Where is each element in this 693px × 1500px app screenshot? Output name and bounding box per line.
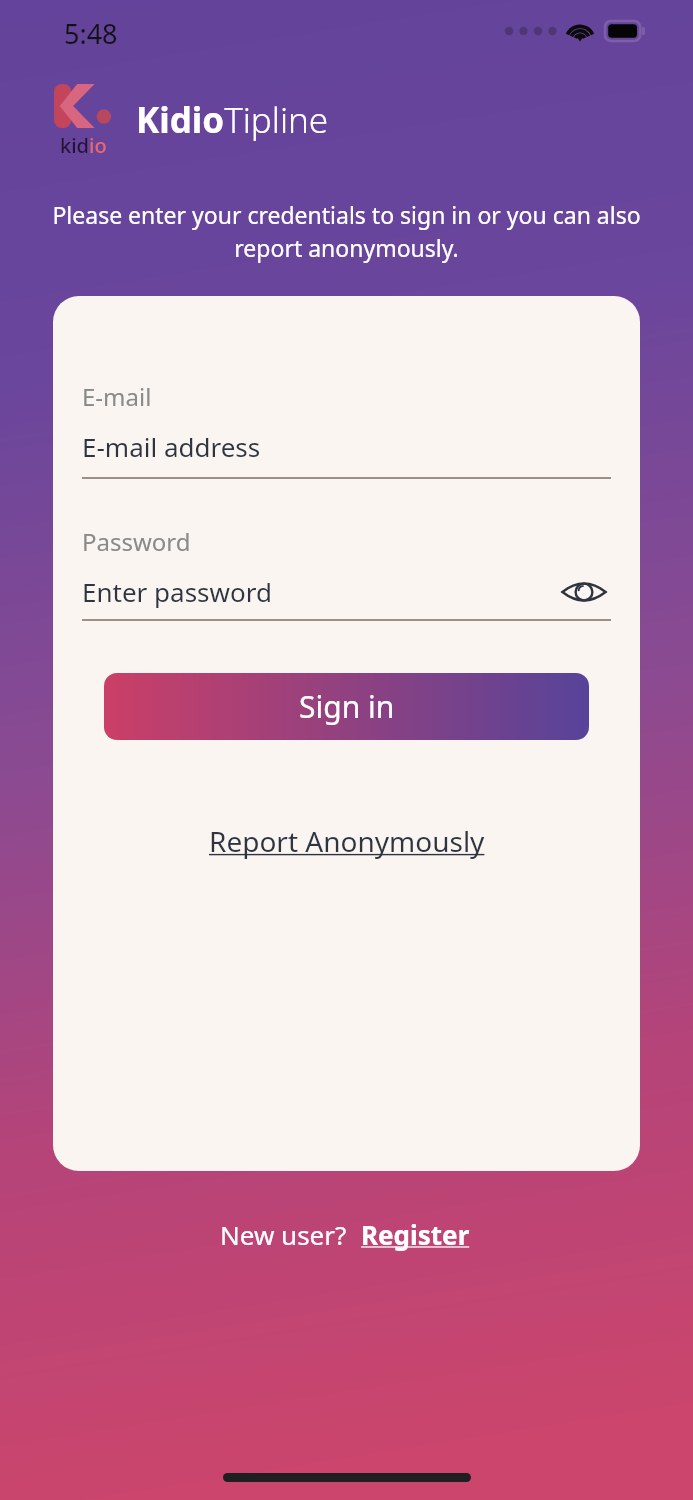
button[interactable]: Enter password [82,574,611,621]
staticText: kidio [60,132,107,159]
button[interactable]: Register [357,1213,474,1256]
staticText: Report Anonymously [209,822,485,860]
staticText: 5:48 [64,15,118,52]
button[interactable]: E-mail address [82,429,611,479]
staticText: Register [361,1217,470,1252]
staticText: Please enter your credentials to sign in… [46,199,647,264]
staticText: KidioTipline [136,96,329,144]
button[interactable]: Report Anonymously [201,818,493,864]
staticText: New user? [220,1217,347,1252]
staticText: E-mail address [82,429,261,464]
staticText: Sign in [299,686,395,727]
staticText: Enter password [82,574,272,609]
button[interactable]: Sign in [104,673,589,740]
staticText: Password [82,525,191,558]
button[interactable]: Show password [557,575,611,609]
staticText: E-mail [82,380,152,413]
